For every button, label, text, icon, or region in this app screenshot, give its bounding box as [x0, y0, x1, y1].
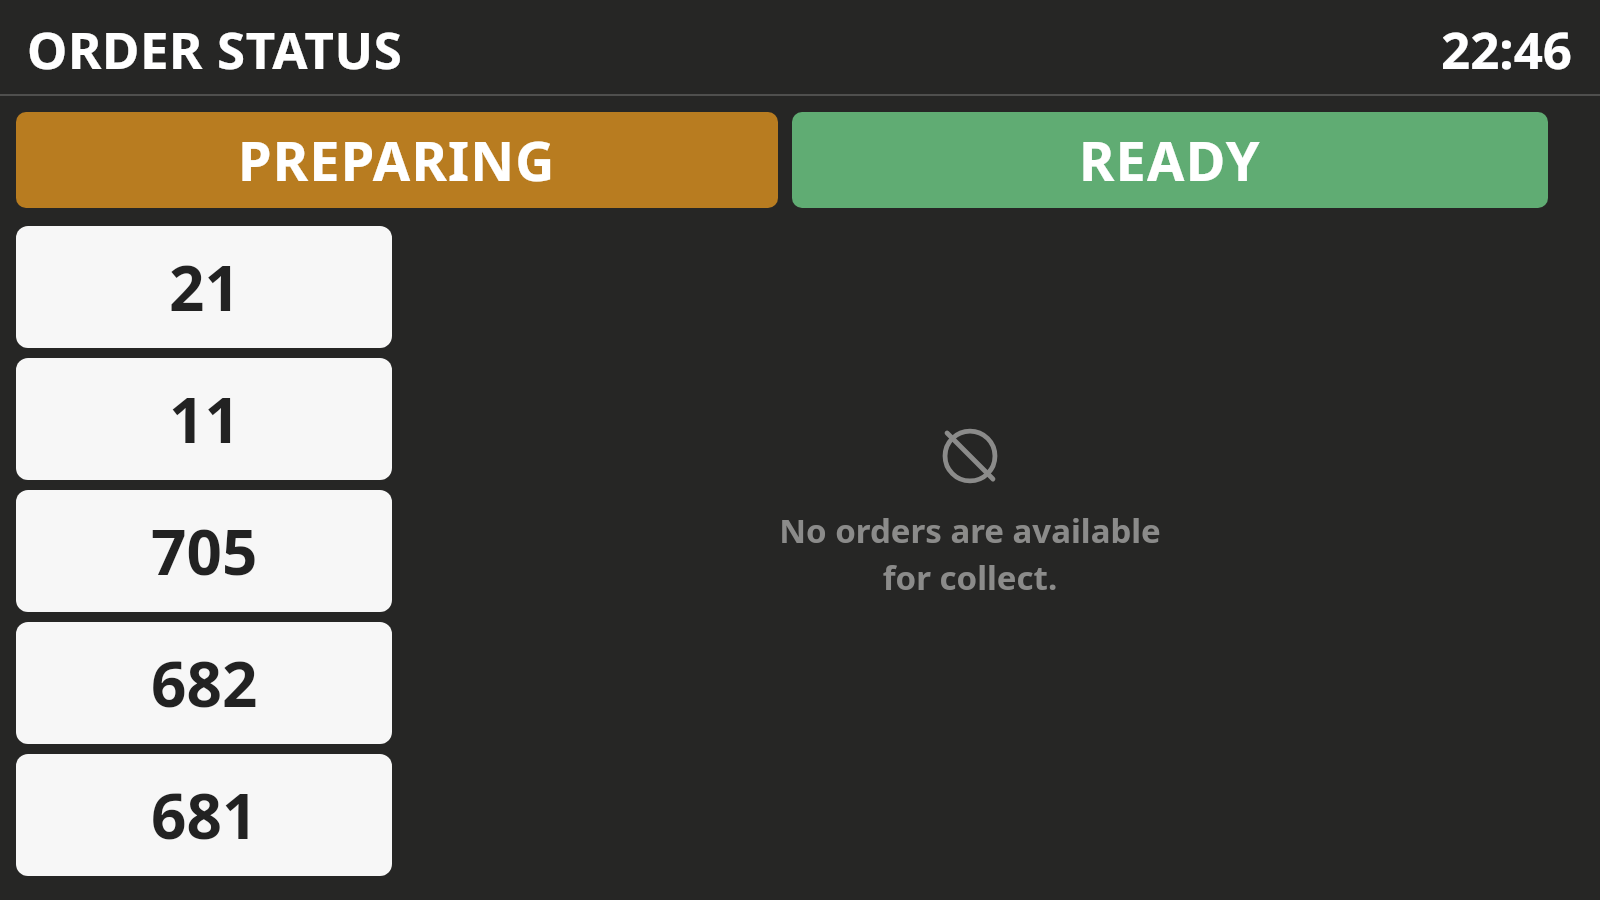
other: No orders available [938, 424, 1002, 488]
staticText: 682 [151, 641, 258, 725]
button[interactable]: 682 [16, 622, 392, 744]
button[interactable]: 681 [16, 754, 392, 876]
button[interactable]: 11 [16, 358, 392, 480]
button[interactable]: 21 [16, 226, 392, 348]
button[interactable]: READY [792, 112, 1548, 208]
staticText: PREPARING [238, 123, 556, 197]
staticText: 681 [151, 773, 258, 857]
button[interactable]: PREPARING [16, 112, 778, 208]
staticText: 22:46 [1441, 14, 1573, 83]
staticText: 11 [169, 377, 240, 461]
staticText: 21 [169, 245, 240, 329]
staticText: No orders are available for collect. [779, 508, 1161, 600]
staticText: READY [1079, 123, 1261, 197]
staticText: ORDER STATUS [27, 14, 403, 83]
button[interactable]: 705 [16, 490, 392, 612]
staticText: 705 [151, 509, 258, 593]
